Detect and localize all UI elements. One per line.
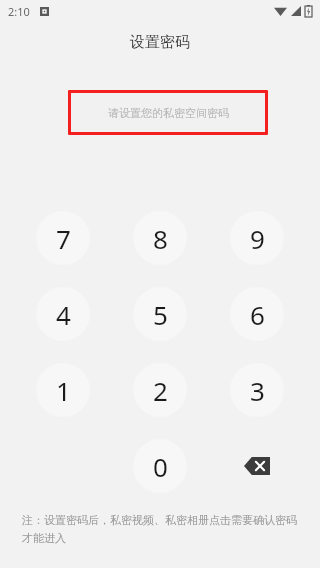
button[interactable]: 8 <box>133 211 187 265</box>
staticText: 设置密码 <box>130 33 190 52</box>
staticText: 5 <box>153 297 168 332</box>
button[interactable]: Backspace <box>230 439 284 493</box>
staticText: 1 <box>56 373 71 408</box>
button[interactable]: 请设置您的私密空间密码 <box>71 93 265 132</box>
button[interactable]: 2 <box>133 363 187 417</box>
staticText: 请设置您的私密空间密码 <box>108 106 229 120</box>
button[interactable]: 6 <box>230 287 284 341</box>
button[interactable]: 5 <box>133 287 187 341</box>
staticText: 7 <box>56 221 71 256</box>
staticText: 4 <box>56 297 71 332</box>
staticText: 8 <box>153 221 168 256</box>
staticText: 0 <box>153 449 168 484</box>
staticText: 2:10 <box>8 4 30 19</box>
button[interactable]: 9 <box>230 211 284 265</box>
button[interactable]: 0 <box>133 439 187 493</box>
staticText: 3 <box>250 373 265 408</box>
button[interactable]: 4 <box>36 287 90 341</box>
staticText: 2 <box>153 373 168 408</box>
button[interactable]: 7 <box>36 211 90 265</box>
staticText: 注：设置密码后，私密视频、私密相册点击需要确认密码才能进入 <box>22 513 298 545</box>
button[interactable]: 1 <box>36 363 90 417</box>
button[interactable]: 3 <box>230 363 284 417</box>
staticText: 6 <box>250 297 265 332</box>
staticText: 9 <box>250 221 265 256</box>
